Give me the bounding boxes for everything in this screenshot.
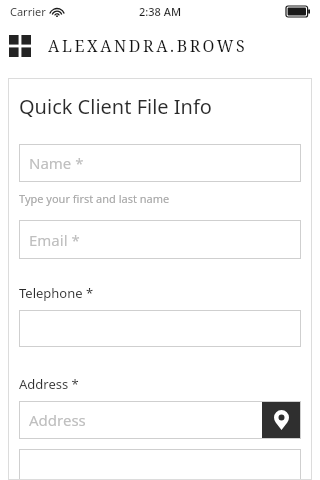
staticText: Telephone * [19,284,94,302]
staticText: Name * [29,153,84,173]
button[interactable]: Address [19,401,262,439]
staticText: Email * [29,230,80,250]
staticText: Type your first and last name [19,191,170,206]
staticText: Carrier [10,4,46,19]
button[interactable] [19,449,301,480]
staticText: Quick Client File Info [19,93,212,120]
button[interactable] [19,310,301,347]
button[interactable]: Menu [9,35,31,57]
button[interactable]: Use current location [262,401,301,439]
staticText: Address [29,410,86,430]
button[interactable]: Name * [19,144,301,182]
button[interactable]: Email * [19,220,301,259]
staticText: Address * [19,375,79,393]
staticText: 2:38 AM [139,4,182,19]
staticText: ALEXANDRA.BROWS [48,35,248,57]
